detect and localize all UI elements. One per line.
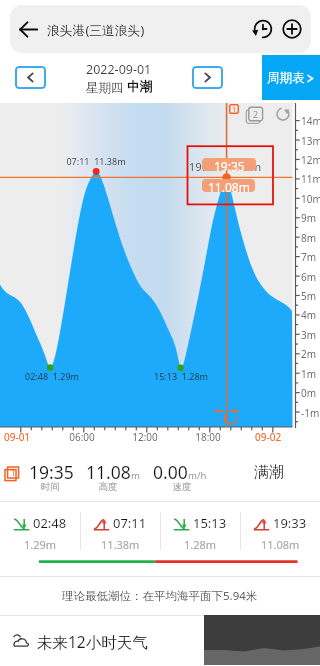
staticText: -1m: [301, 406, 320, 420]
staticText: 中潮: [127, 79, 152, 95]
staticText: 18:00: [194, 430, 222, 444]
staticText: 0.00: [153, 460, 188, 484]
staticText: 19:33 11.08m: [180, 159, 270, 175]
staticText: 07:11: [113, 514, 147, 532]
staticText: 15:13: [193, 514, 227, 532]
button[interactable]: Next day: [192, 66, 223, 89]
button[interactable]: Add: [272, 5, 311, 53]
button[interactable]: 19:33: [241, 502, 320, 560]
staticText: 满潮: [254, 463, 284, 482]
staticText: 9m: [301, 211, 317, 225]
staticText: 19:35: [214, 158, 245, 171]
staticText: 周期表: [267, 70, 305, 86]
staticText: 11.08: [86, 460, 131, 484]
staticText: 19:33: [273, 514, 307, 532]
staticText: 浪头港(三道浪头): [47, 21, 145, 38]
staticText: 1.28m: [184, 537, 217, 552]
staticText: 19:35: [29, 460, 74, 484]
staticText: 14m: [301, 114, 320, 128]
button[interactable]: 15:13: [161, 502, 240, 560]
button[interactable]: 周期表: [262, 55, 320, 100]
staticText: 0m: [301, 386, 317, 400]
button[interactable]: One day view: [226, 101, 242, 117]
staticText: 时间: [30, 481, 70, 493]
staticText: 1.29m: [24, 537, 57, 552]
staticText: 1: [232, 104, 237, 114]
staticText: 未来12小时天气: [37, 631, 148, 652]
staticText: 理论最低潮位：在平均海平面下5.94米: [62, 588, 258, 604]
staticText: 02:48: [33, 514, 67, 532]
staticText: 11.08m: [261, 537, 300, 552]
staticText: 4m: [301, 308, 317, 322]
button[interactable]: Two day view: [244, 103, 264, 124]
button[interactable]: Refresh: [274, 105, 292, 123]
staticText: 11.38m: [101, 537, 140, 552]
staticText: 2022-09-01: [86, 61, 152, 78]
staticText: 11m: [301, 172, 320, 186]
staticText: 13m: [301, 134, 320, 148]
button[interactable]: 07:11: [81, 502, 160, 560]
staticText: 星期四: [86, 79, 127, 96]
staticText: 高度: [88, 481, 128, 493]
button[interactable]: 1: [0, 445, 320, 501]
button[interactable]: 理论最低潮位：在平均海平面下5.94米: [0, 577, 320, 615]
staticText: m/h: [188, 469, 207, 482]
staticText: 09-02: [255, 430, 282, 444]
staticText: 2: [253, 108, 259, 120]
staticText: 1m: [301, 367, 317, 381]
staticText: 15:13 1.28m: [136, 370, 226, 382]
staticText: 12:00: [131, 430, 159, 444]
staticText: m: [131, 469, 140, 482]
staticText: 02:48 1.29m: [7, 370, 97, 382]
button[interactable]: Back: [10, 5, 48, 53]
button[interactable]: 02:48: [0, 502, 80, 560]
staticText: 7m: [301, 250, 317, 264]
staticText: 速度: [162, 481, 202, 493]
staticText: 5m: [301, 289, 317, 303]
staticText: 10m: [301, 192, 320, 206]
staticText: 8m: [301, 231, 317, 245]
button[interactable]: History: [243, 5, 282, 53]
staticText: 6m: [301, 270, 317, 284]
button[interactable]: 未来12小时天气: [0, 616, 320, 666]
staticText: 12m: [301, 153, 320, 167]
button[interactable]: Previous day: [15, 66, 46, 89]
staticText: 3m: [301, 328, 317, 342]
staticText: 11.08m: [208, 179, 250, 192]
staticText: 07:11 11.38m: [51, 155, 141, 167]
staticText: 09-01: [4, 430, 31, 444]
staticText: 06:00: [68, 430, 96, 444]
staticText: 1: [11, 467, 16, 478]
staticText: 2m: [301, 347, 317, 361]
